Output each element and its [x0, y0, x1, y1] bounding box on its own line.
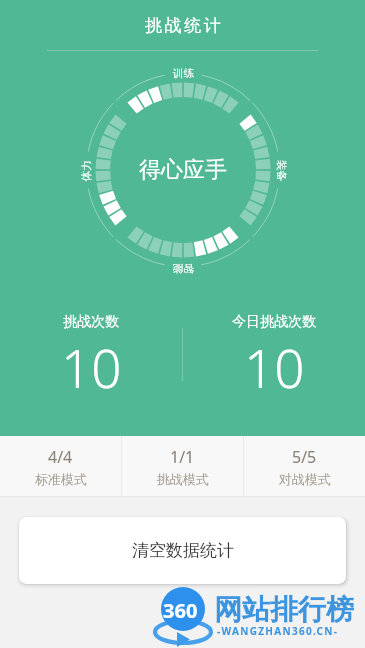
button[interactable]: 挑战次数: [0, 300, 182, 410]
staticText: 清空数据统计: [132, 540, 234, 561]
staticText: 对战模式: [279, 471, 331, 487]
staticText: 网站排行榜: [214, 592, 354, 627]
staticText: 360: [163, 597, 198, 624]
staticText: 挑战统计: [145, 15, 224, 36]
button[interactable]: 清空数据统计: [19, 517, 346, 584]
staticText: 体力: [80, 160, 93, 181]
staticText: 5/5: [292, 446, 317, 468]
staticText: 装备: [275, 160, 288, 181]
staticText: 智能: [173, 262, 194, 275]
staticText: 训练: [173, 67, 194, 80]
button[interactable]: 4/4: [0, 436, 121, 496]
staticText: 挑战次数: [63, 313, 119, 331]
staticText: 10: [61, 331, 122, 403]
button[interactable]: 1/1: [122, 436, 243, 496]
button[interactable]: 今日挑战次数: [183, 300, 365, 410]
staticText: 10: [244, 331, 305, 403]
staticText: 1/1: [170, 446, 195, 468]
staticText: -WANGZHAN360.CN-: [217, 624, 339, 638]
staticText: 标准模式: [35, 471, 87, 487]
staticText: 得心应手: [139, 156, 227, 184]
button[interactable]: 挑战统计: [0, 0, 365, 50]
button[interactable]: 5/5: [244, 436, 365, 496]
staticText: 挑战模式: [157, 471, 209, 487]
staticText: 今日挑战次数: [232, 313, 316, 331]
staticText: 4/4: [48, 446, 73, 468]
